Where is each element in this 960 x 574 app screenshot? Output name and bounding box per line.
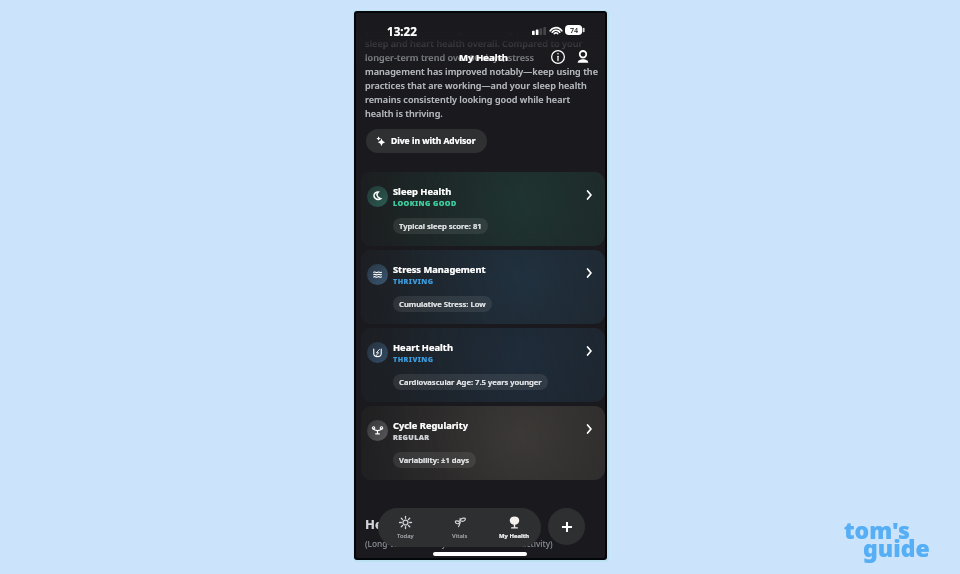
staticText: Dive in with Advisor	[391, 135, 476, 147]
staticText: Stress Management	[393, 263, 486, 276]
staticText: Today	[397, 532, 414, 540]
staticText: Heart Health	[393, 341, 453, 354]
staticText: THRIVING	[393, 354, 434, 364]
button[interactable]: Today	[378, 508, 433, 547]
button[interactable]: My Health	[487, 508, 541, 547]
button[interactable]: Information	[550, 49, 566, 65]
staticText: Sleep Health	[393, 185, 452, 198]
staticText: My Health	[499, 532, 530, 540]
button[interactable]: Cycle Regularity	[361, 406, 605, 480]
button[interactable]: Heart Health	[361, 328, 605, 402]
staticText: Typical sleep score: 81	[399, 221, 482, 231]
staticText: your overall wellbeing is trending posit…	[365, 23, 598, 120]
staticText: Cardiovascular Age: 7.5 years younger	[399, 377, 542, 387]
staticText: 74	[570, 25, 579, 35]
staticText: 13:22	[387, 24, 417, 40]
staticText: THRIVING	[393, 276, 434, 286]
staticText: Cumulative Stress: Low	[399, 299, 486, 309]
staticText: (Long-term view of your cardiovascular a…	[365, 538, 553, 549]
staticText: REGULAR	[393, 432, 430, 442]
button[interactable]: Add	[548, 508, 585, 545]
staticText: My Health	[459, 51, 509, 64]
staticText: LOOKING GOOD	[393, 198, 457, 208]
staticText: Heart Health	[365, 515, 449, 533]
button[interactable]: Sleep Health	[361, 172, 605, 246]
staticText: guide	[863, 532, 930, 563]
button[interactable]: Profile	[575, 49, 591, 65]
button[interactable]: Stress Management	[361, 250, 605, 324]
button[interactable]: Vitals	[433, 508, 487, 547]
button[interactable]: Dive in with Advisor	[366, 129, 487, 153]
staticText: tom's	[844, 514, 910, 545]
staticText: Vitals	[452, 532, 468, 540]
staticText: Cycle Regularity	[393, 419, 468, 432]
staticText: Variability: ±1 days	[399, 455, 470, 465]
